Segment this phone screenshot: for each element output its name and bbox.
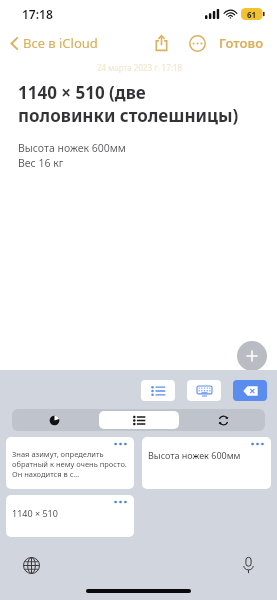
button[interactable]: Keyboard bbox=[187, 380, 221, 401]
button[interactable]: Lists bbox=[141, 380, 175, 401]
button[interactable]: Share bbox=[148, 30, 174, 56]
button[interactable]: Dictation bbox=[235, 552, 261, 578]
staticText: 1140 × 510 (две половинки столешницы) bbox=[18, 81, 239, 127]
button[interactable]: Delete bbox=[233, 380, 267, 401]
staticText: Зная азимут, определить обратный к нему … bbox=[12, 449, 128, 479]
staticText: Высота ножек 600мм Вес 16 кг bbox=[18, 141, 126, 170]
staticText: Все в iCloud bbox=[23, 34, 98, 52]
button[interactable]: Все в iCloud bbox=[8, 31, 100, 55]
button[interactable]: More options bbox=[184, 30, 210, 56]
staticText: 24 марта 2023 г. 17:18 bbox=[18, 62, 261, 73]
button[interactable]: Add bbox=[237, 341, 267, 371]
button[interactable]: 1140 × 510 bbox=[6, 495, 134, 537]
button[interactable]: Refresh bbox=[183, 411, 263, 429]
staticText: Готово bbox=[219, 34, 264, 52]
button[interactable]: Зная азимут, определить обратный к нему … bbox=[6, 437, 134, 489]
staticText: Высота ножек 600мм bbox=[148, 449, 241, 461]
button[interactable]: Высота ножек 600мм bbox=[142, 437, 271, 489]
button[interactable]: Change keyboard language bbox=[18, 552, 44, 578]
button[interactable]: Готово bbox=[216, 31, 267, 55]
button[interactable]: Recent bbox=[14, 411, 95, 429]
staticText: 1140 × 510 bbox=[12, 507, 58, 519]
staticText: 61 bbox=[247, 9, 257, 20]
button[interactable]: Lists bbox=[99, 411, 179, 429]
staticText: 17:18 bbox=[22, 6, 53, 22]
